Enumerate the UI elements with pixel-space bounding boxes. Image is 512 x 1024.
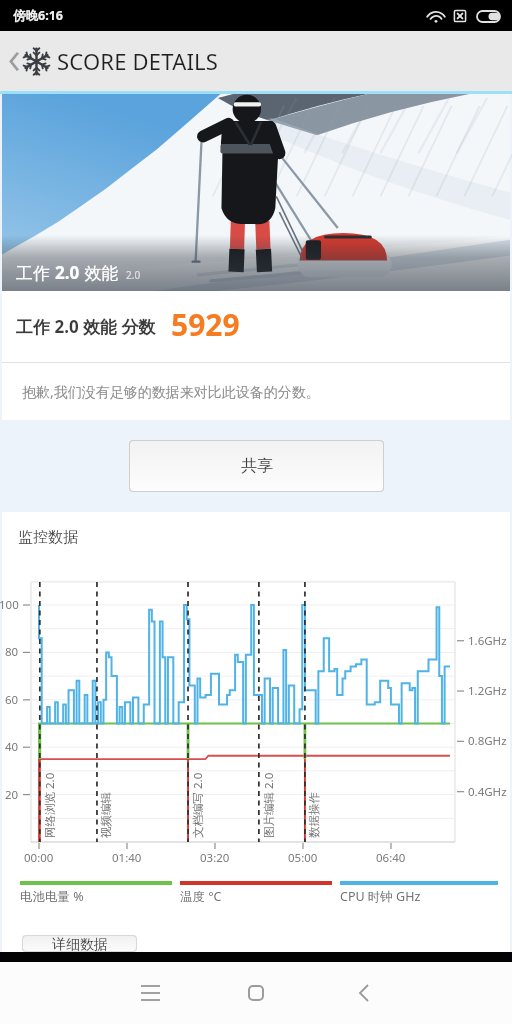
staticText: 共享 xyxy=(241,456,273,476)
staticText: CPU 时钟 GHz xyxy=(340,888,421,905)
button[interactable]: Back xyxy=(5,39,23,83)
button[interactable]: 详细数据 xyxy=(23,936,136,951)
staticText: 2.0 xyxy=(55,261,80,284)
staticText: 详细数据 xyxy=(52,936,108,951)
staticText: SCORE DETAILS xyxy=(57,46,219,76)
button[interactable]: Home xyxy=(234,971,278,1015)
staticText: 傍晚6:16 xyxy=(13,7,63,24)
staticText: 工作 2.0 效能 分数 xyxy=(16,315,156,338)
staticText: 工作 xyxy=(16,261,55,284)
button[interactable]: 共享 xyxy=(130,441,383,491)
staticText: 5929 xyxy=(171,304,240,345)
staticText: 效能 xyxy=(80,261,119,284)
button[interactable]: Back xyxy=(342,971,386,1015)
staticText: 温度 °C xyxy=(180,888,222,905)
button[interactable]: Recent apps xyxy=(128,971,172,1015)
staticText: 电池电量 % xyxy=(20,888,84,905)
staticText: 2.0 xyxy=(126,268,141,282)
staticText: 抱歉,我们没有足够的数据来对比此设备的分数。 xyxy=(22,382,320,401)
staticText: 监控数据 xyxy=(18,528,78,547)
